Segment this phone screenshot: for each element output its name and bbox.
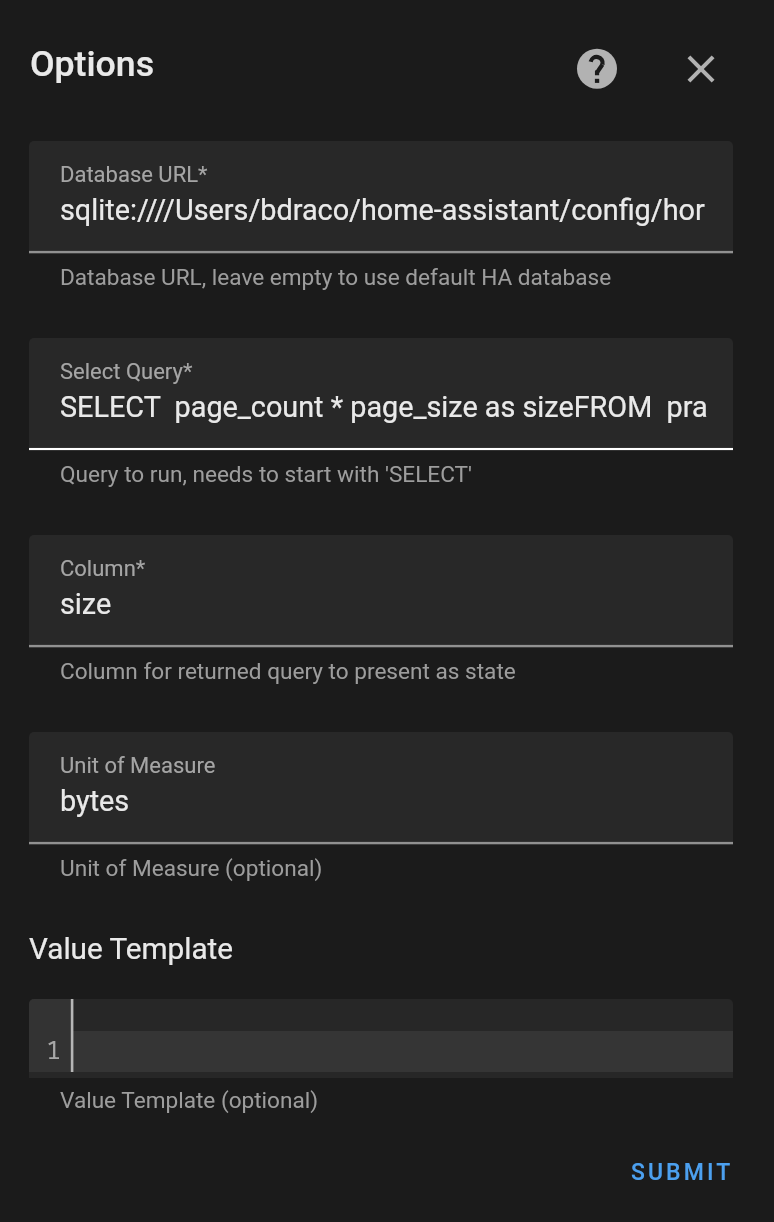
- staticText: Value Template: [29, 931, 234, 966]
- staticText: 1: [46, 1032, 62, 1066]
- staticText: SELECT page_count * page_size as sizeFRO…: [60, 390, 733, 424]
- staticText: Value Template (optional): [60, 1087, 319, 1113]
- staticText: size: [60, 587, 733, 621]
- button[interactable]: Close: [677, 45, 725, 93]
- staticText: Database URL*: [60, 162, 208, 188]
- button[interactable]: Database URL*: [29, 141, 733, 250]
- staticText: bytes: [60, 784, 733, 818]
- staticText: Unit of Measure: [60, 753, 216, 779]
- staticText: Select Query*: [60, 359, 193, 385]
- button[interactable]: Select Query*: [29, 338, 733, 447]
- staticText: Query to run, needs to start with 'SELEC…: [60, 461, 473, 487]
- staticText: sqlite:////Users/bdraco/home-assistant/c…: [60, 193, 733, 227]
- button[interactable]: SUBMIT: [615, 1147, 750, 1198]
- button[interactable]: Help: [573, 45, 621, 93]
- staticText: Unit of Measure (optional): [60, 855, 323, 881]
- button[interactable]: Unit of Measure: [29, 732, 733, 841]
- staticText: Column for returned query to present as …: [60, 658, 516, 684]
- staticText: Column*: [60, 556, 146, 582]
- staticText: Options: [30, 43, 155, 85]
- button[interactable]: Column*: [29, 535, 733, 644]
- button[interactable]: 1: [29, 999, 733, 1078]
- staticText: SUBMIT: [631, 1159, 734, 1186]
- staticText: Database URL, leave empty to use default…: [60, 264, 612, 290]
